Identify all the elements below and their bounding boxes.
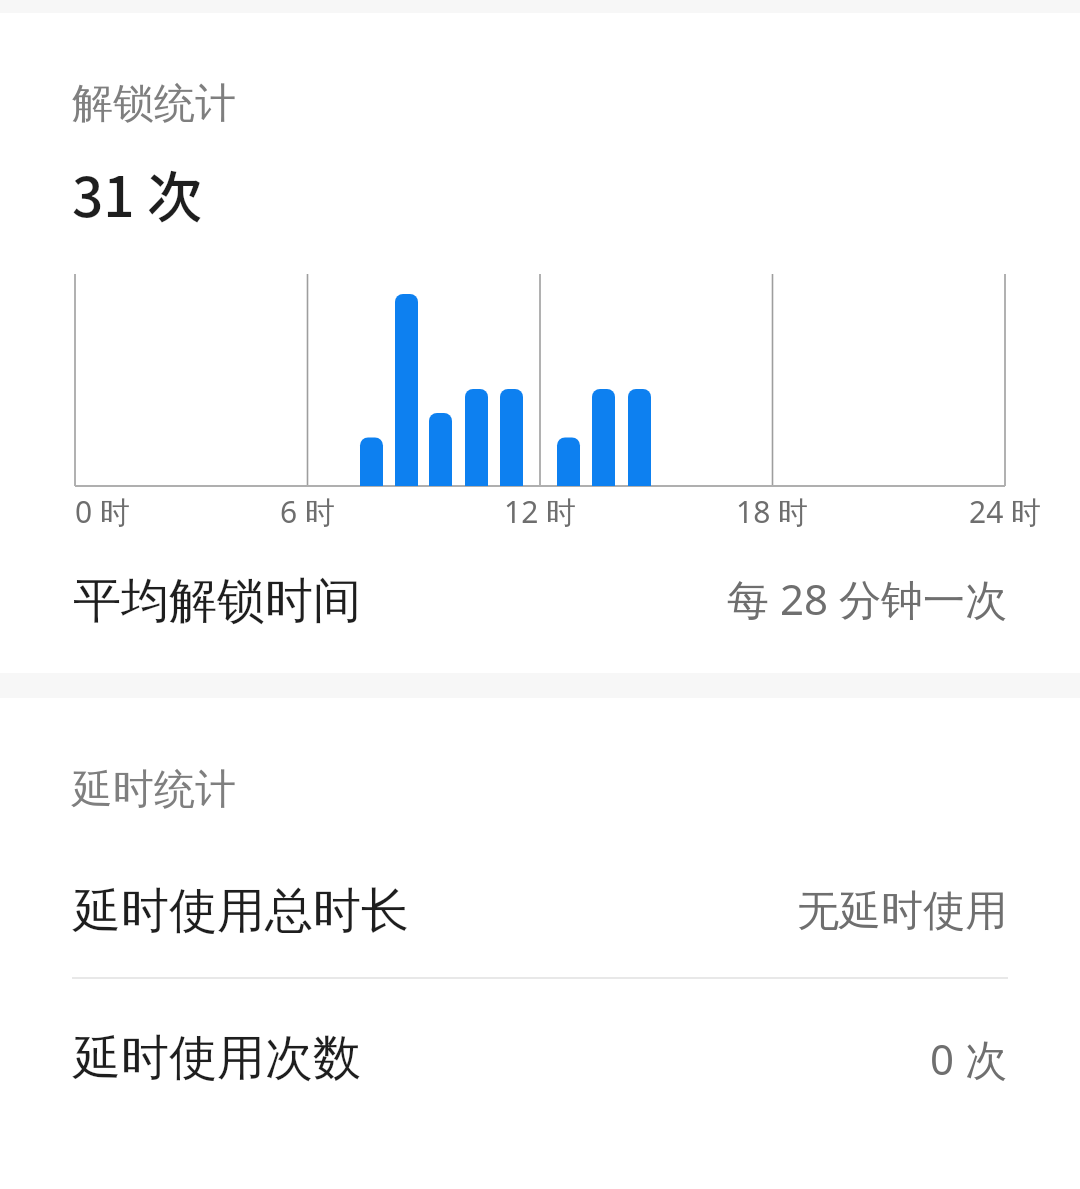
staticText: 12 时 — [504, 491, 577, 532]
staticText: 延时使用次数 — [73, 1028, 361, 1088]
staticText: 0 时 — [75, 491, 130, 532]
staticText: 延时统计 — [72, 764, 236, 816]
staticText: 无延时使用 — [797, 885, 1007, 938]
staticText: 24 时 — [969, 491, 1042, 532]
staticText: 每 28 分钟一次 — [727, 570, 1007, 627]
staticText: 0 次 — [930, 1030, 1007, 1087]
button[interactable] — [0, 1013, 1080, 1103]
button[interactable] — [0, 556, 1080, 646]
button[interactable] — [0, 866, 1080, 956]
staticText: 解锁统计 — [72, 78, 236, 130]
staticText: 平均解锁时间 — [73, 571, 361, 631]
staticText: 延时使用总时长 — [73, 881, 409, 941]
staticText: 31 次 — [72, 153, 203, 233]
staticText: 6 时 — [280, 491, 335, 532]
staticText: 18 时 — [736, 491, 809, 532]
